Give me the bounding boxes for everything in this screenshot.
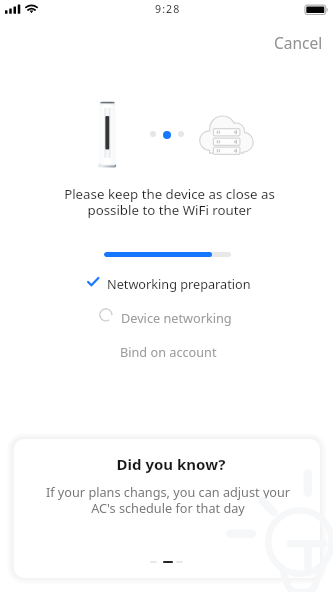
staticText: Bind on account bbox=[120, 343, 217, 360]
staticText: Please keep the device as close as possi… bbox=[3, 185, 333, 219]
button[interactable]: Bind on account bbox=[80, 340, 260, 368]
staticText: Networking preparation bbox=[107, 275, 251, 292]
button[interactable]: Did you know? bbox=[14, 439, 320, 578]
staticText: Device networking bbox=[121, 309, 232, 326]
button[interactable]: Cancel bbox=[266, 28, 331, 57]
staticText: 9:28 bbox=[155, 2, 181, 16]
staticText: If your plans changs, you can adjust you… bbox=[15, 483, 320, 516]
staticText: Did you know? bbox=[18, 454, 320, 474]
staticText: Cancel bbox=[274, 32, 323, 53]
button[interactable]: Networking preparation bbox=[80, 272, 260, 300]
button[interactable]: Device networking bbox=[80, 306, 260, 334]
